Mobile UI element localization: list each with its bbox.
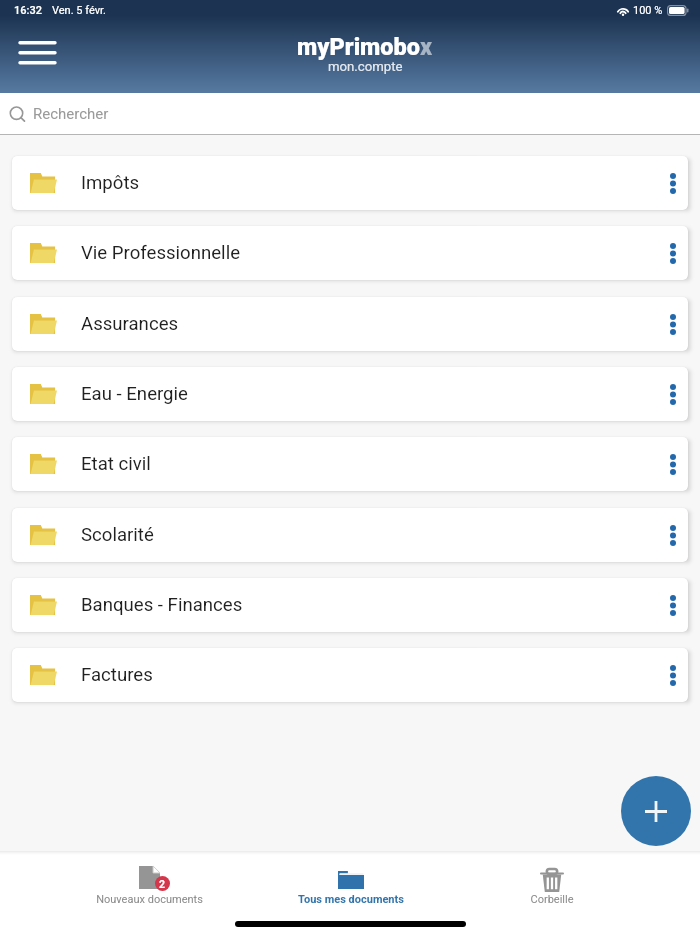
button[interactable]: Plus d'options xyxy=(658,300,688,348)
staticText: 100 % xyxy=(633,4,663,17)
button[interactable]: Corbeille xyxy=(451,862,652,906)
staticText: Impôts xyxy=(81,172,140,194)
button[interactable]: Factures xyxy=(12,648,688,702)
staticText: 16:32 xyxy=(14,4,42,17)
button[interactable]: Plus d'options xyxy=(658,229,688,277)
button[interactable]: Plus d'options xyxy=(658,440,688,488)
staticText: myPrimobo xyxy=(297,33,420,61)
staticText: Factures xyxy=(81,664,153,686)
button[interactable]: Vie Professionnelle xyxy=(12,226,688,280)
staticText: Assurances xyxy=(81,313,179,335)
button[interactable]: Tous mes documents xyxy=(250,862,451,906)
button[interactable]: Assurances xyxy=(12,297,688,351)
button[interactable]: Eau - Energie xyxy=(12,367,688,421)
button[interactable]: 2 xyxy=(48,862,250,906)
button[interactable]: Menu xyxy=(5,29,69,77)
staticText: Vie Professionnelle xyxy=(81,242,241,264)
button[interactable]: Plus d'options xyxy=(658,370,688,418)
staticText: Corbeille xyxy=(530,893,574,906)
staticText: Banques - Finances xyxy=(81,594,243,616)
button[interactable]: Plus d'options xyxy=(658,651,688,699)
staticText: 2 xyxy=(159,878,166,890)
button[interactable]: Impôts xyxy=(12,156,688,210)
staticText: Tous mes documents xyxy=(298,893,404,906)
button[interactable]: Rechercher xyxy=(8,93,700,134)
button[interactable]: Ajouter un document xyxy=(621,776,691,846)
button[interactable]: Plus d'options xyxy=(658,511,688,559)
staticText: Eau - Energie xyxy=(81,383,188,405)
button[interactable]: Banques - Finances xyxy=(12,578,688,632)
button[interactable]: Scolarité xyxy=(12,508,688,562)
button[interactable]: Plus d'options xyxy=(658,159,688,207)
staticText: Ven. 5 févr. xyxy=(52,4,106,17)
staticText: Rechercher xyxy=(33,105,109,123)
staticText: Nouveaux documents xyxy=(96,893,203,906)
staticText: x xyxy=(420,33,433,61)
button[interactable]: Plus d'options xyxy=(658,581,688,629)
staticText: mon.compte xyxy=(328,59,403,74)
staticText: Scolarité xyxy=(81,524,154,546)
staticText: Etat civil xyxy=(81,453,151,475)
button[interactable]: Etat civil xyxy=(12,437,688,491)
